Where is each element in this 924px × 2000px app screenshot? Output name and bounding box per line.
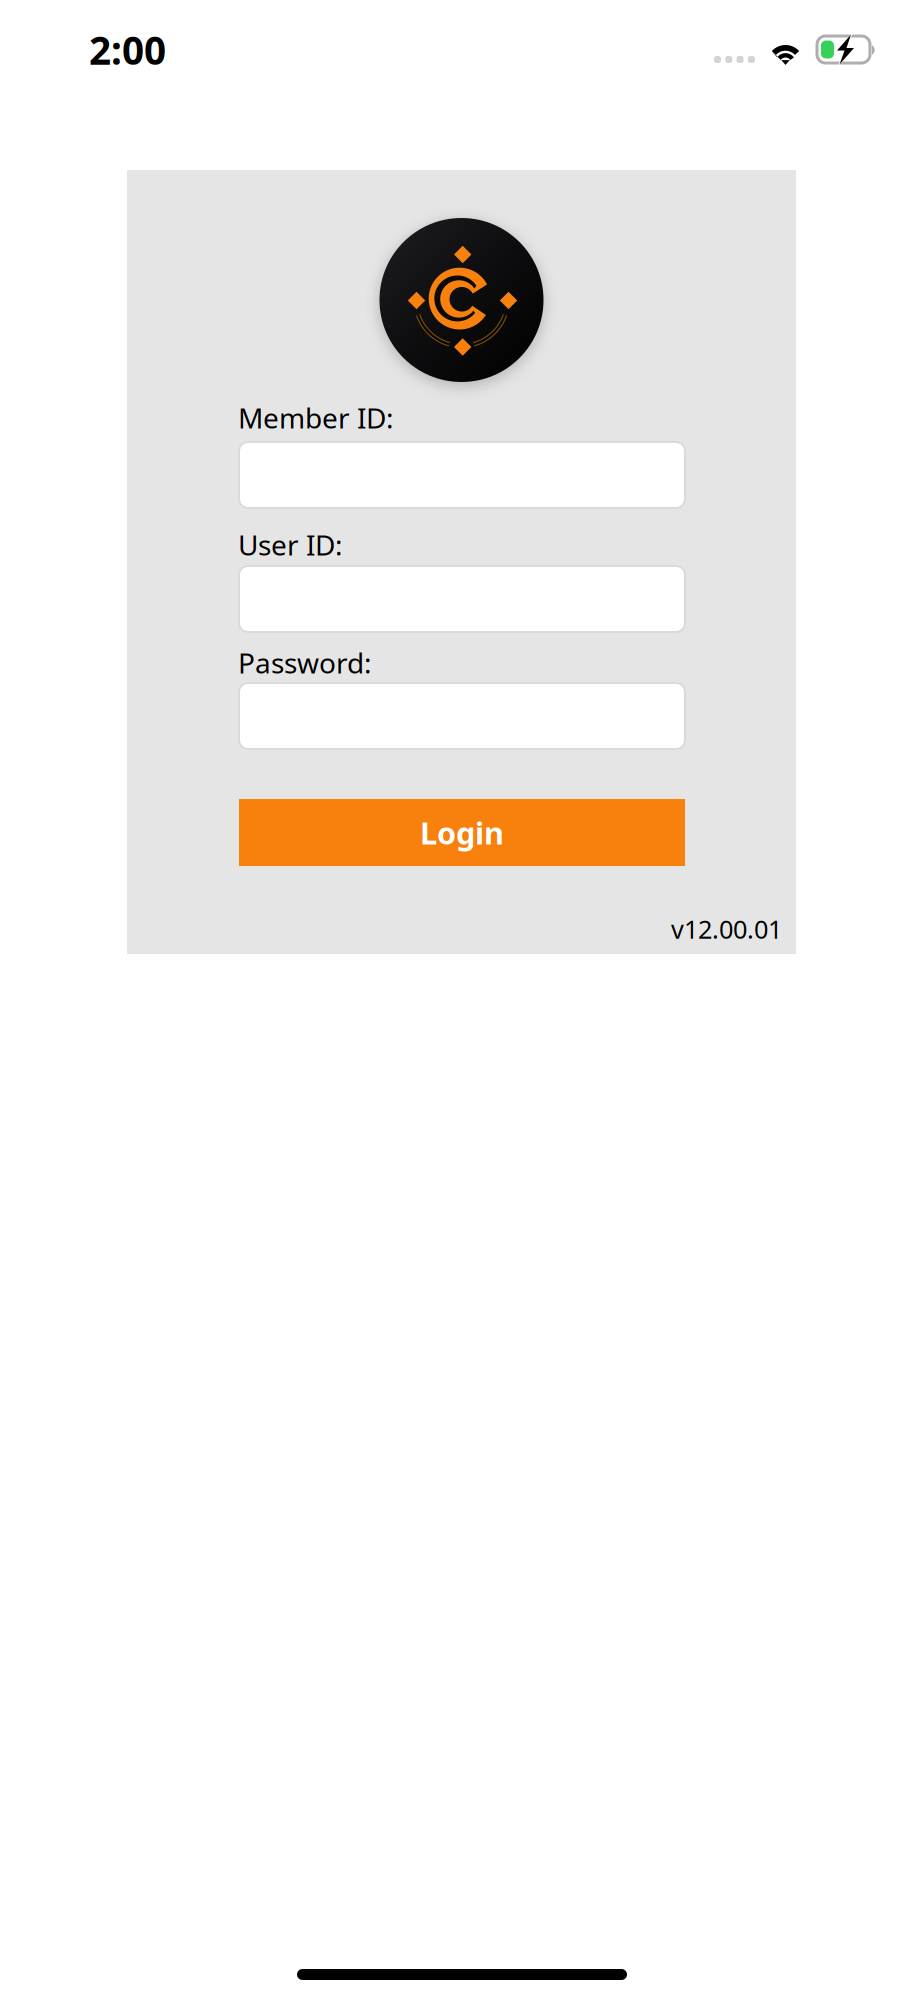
button[interactable]: User ID: [239, 566, 685, 632]
staticText: User ID:: [238, 526, 343, 563]
button[interactable]: Member ID: [239, 442, 685, 508]
staticText: Password:: [238, 644, 372, 681]
button[interactable]: Password: [239, 683, 685, 749]
button[interactable]: Login: [239, 799, 685, 866]
staticText: Login: [420, 812, 504, 853]
staticText: 2:00: [89, 24, 166, 75]
staticText: v12.00.01: [671, 912, 782, 946]
staticText: Member ID:: [238, 399, 394, 436]
